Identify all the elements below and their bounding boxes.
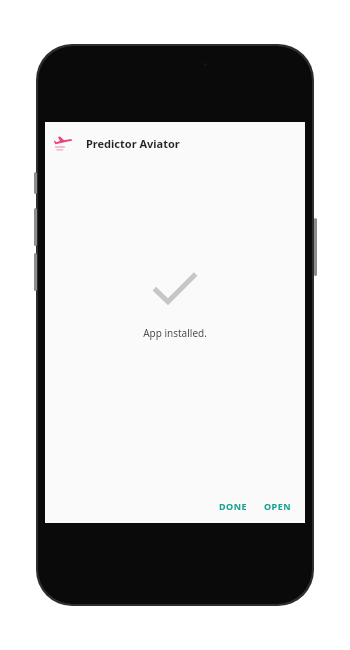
other: Predictor Aviator app icon (54, 133, 74, 153)
staticText: DONE (219, 500, 248, 512)
button[interactable]: OPEN (258, 495, 298, 517)
staticText: OPEN (264, 500, 292, 512)
button[interactable]: DONE (213, 495, 254, 517)
staticText: App installed. (143, 326, 207, 340)
staticText: Predictor Aviator (86, 136, 180, 151)
